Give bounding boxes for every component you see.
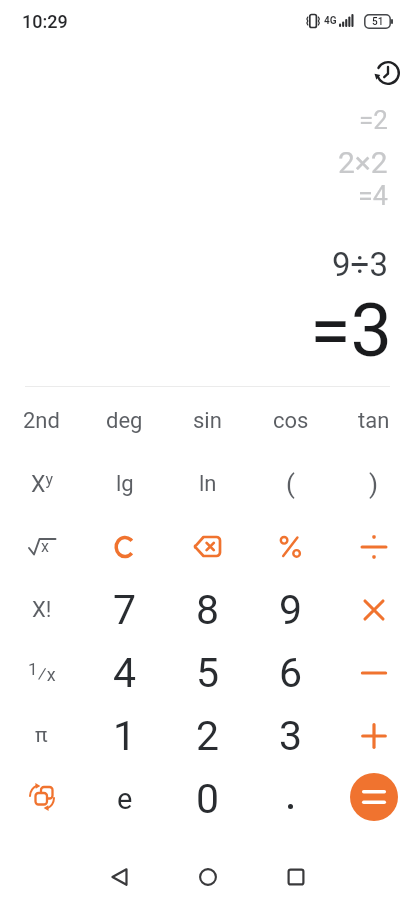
button[interactable]: Xy	[0, 452, 83, 515]
staticText: 4	[113, 649, 137, 697]
staticText: 1	[113, 712, 137, 760]
button[interactable]: (	[249, 452, 332, 515]
staticText: x	[41, 537, 49, 556]
button[interactable]	[375, 60, 401, 86]
staticText: 4G	[324, 15, 337, 27]
staticText: =2	[359, 105, 388, 135]
staticText: )	[369, 469, 379, 499]
staticText: 9	[279, 586, 303, 634]
button[interactable]: 4	[83, 641, 166, 704]
button[interactable]: π	[0, 704, 83, 767]
button[interactable]	[332, 767, 415, 830]
staticText: 1⁄x	[28, 659, 56, 686]
button[interactable]	[110, 867, 130, 887]
staticText: tan	[358, 408, 390, 434]
staticText: ln	[199, 471, 217, 497]
staticText: 9÷3	[332, 245, 388, 284]
button[interactable]: 3	[249, 704, 332, 767]
button[interactable]: 6	[249, 641, 332, 704]
button[interactable]	[332, 515, 415, 578]
button[interactable]	[249, 515, 332, 578]
staticText: 6	[279, 649, 303, 697]
button[interactable]: )	[332, 452, 415, 515]
button[interactable]: 1	[83, 704, 166, 767]
button[interactable]: 2nd	[0, 389, 83, 452]
staticText: lg	[116, 471, 134, 497]
button[interactable]	[249, 767, 332, 830]
button[interactable]: 8	[166, 578, 249, 641]
button[interactable]: 9	[249, 578, 332, 641]
button[interactable]: x	[0, 515, 83, 578]
button[interactable]: sin	[166, 389, 249, 452]
button[interactable]: tan	[332, 389, 415, 452]
staticText: deg	[106, 408, 143, 434]
button[interactable]: 1⁄x	[0, 641, 83, 704]
button[interactable]: 7	[83, 578, 166, 641]
button[interactable]: deg	[83, 389, 166, 452]
staticText: 2nd	[23, 408, 60, 434]
staticText: 8	[196, 586, 220, 634]
button[interactable]	[332, 704, 415, 767]
staticText: e	[117, 782, 133, 816]
button[interactable]: 2	[166, 704, 249, 767]
staticText: Xy	[31, 470, 53, 498]
button[interactable]	[286, 867, 306, 887]
staticText: π	[35, 723, 48, 748]
button[interactable]: X!	[0, 578, 83, 641]
button[interactable]: cos	[249, 389, 332, 452]
staticText: sin	[193, 408, 222, 434]
staticText: cos	[273, 408, 309, 434]
staticText: 10:29	[22, 11, 68, 32]
button[interactable]	[83, 515, 166, 578]
button[interactable]	[332, 578, 415, 641]
staticText: 7	[113, 586, 137, 634]
button[interactable]: e	[83, 767, 166, 830]
button[interactable]	[198, 867, 218, 887]
staticText: 5	[196, 649, 220, 697]
staticText: 0	[196, 775, 220, 823]
staticText: 2×2	[338, 145, 388, 180]
button[interactable]	[166, 515, 249, 578]
button[interactable]	[0, 767, 83, 830]
staticText: 3	[279, 712, 303, 760]
button[interactable]	[332, 641, 415, 704]
staticText: (	[286, 469, 295, 499]
button[interactable]: ln	[166, 452, 249, 515]
staticText: =4	[358, 180, 388, 212]
button[interactable]: 5	[166, 641, 249, 704]
staticText: 2	[196, 712, 220, 760]
staticText: =3	[310, 287, 393, 374]
button[interactable]: lg	[83, 452, 166, 515]
button[interactable]: 0	[166, 767, 249, 830]
staticText: X!	[32, 597, 52, 623]
staticText: 51	[372, 16, 384, 28]
